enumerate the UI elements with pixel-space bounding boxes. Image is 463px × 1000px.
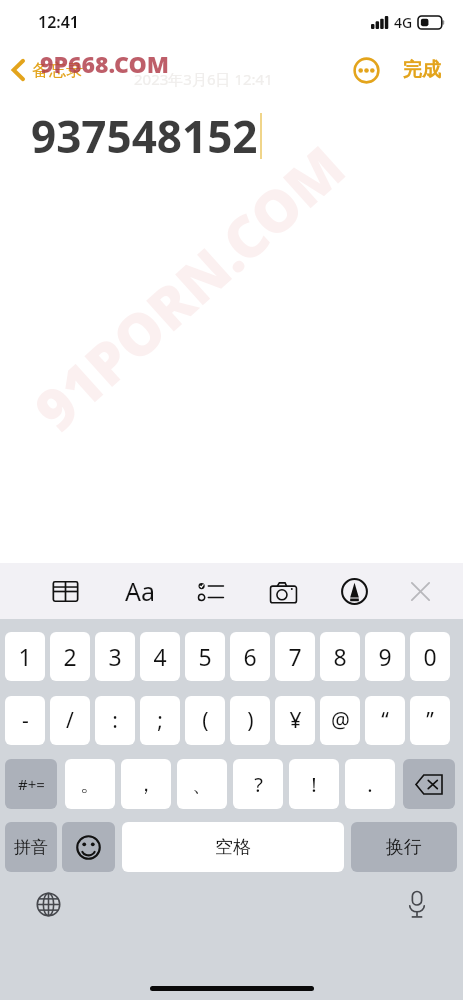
staticText: - [22,706,29,735]
button[interactable]: 5 [185,632,225,681]
button[interactable]: Emoji [62,822,115,872]
staticText: : [112,706,118,735]
staticText: 1 [18,641,32,672]
button[interactable]: 8 [320,632,360,681]
button[interactable]: ¥ [275,696,315,745]
staticText: 6 [243,641,257,672]
staticText: 3 [108,641,122,672]
button[interactable]: : [95,696,135,745]
staticText: 2 [63,641,77,672]
staticText: 9P668.COM [40,48,169,79]
staticText: 备忘录 [32,60,83,81]
staticText: ” [426,706,434,735]
button[interactable]: “ [365,696,405,745]
staticText: @ [331,706,350,735]
button[interactable]: Back [0,53,93,87]
staticText: 7 [288,641,302,672]
other: Back [12,59,25,81]
staticText: 8 [333,641,347,672]
staticText: 2023年3月6日 12:41 [134,69,273,89]
button[interactable]: ” [410,696,450,745]
staticText: ¥ [289,706,302,735]
staticText: ) [247,706,254,735]
button[interactable]: Dictation [395,882,439,926]
button[interactable]: 1 [5,632,45,681]
button[interactable]: . [345,759,395,809]
staticText: 4 [153,641,167,672]
staticText: 4G [394,13,413,32]
button[interactable]: #+= [5,759,57,809]
staticText: 空格 [215,836,251,859]
button[interactable]: @ [320,696,360,745]
staticText: . [367,771,373,798]
staticText: 12:41 [38,11,80,33]
staticText: 91PORN.COM [17,127,361,448]
button[interactable]: 6 [230,632,270,681]
staticText: 完成 [403,58,441,82]
staticText: / [66,706,74,735]
button[interactable]: 。 [65,759,115,809]
staticText: 5 [198,641,212,672]
staticText: ， [136,772,156,797]
button[interactable]: ! [289,759,339,809]
staticText: ; [157,706,163,735]
button[interactable]: ? [233,759,283,809]
button[interactable]: Markup [333,570,375,612]
button[interactable]: / [50,696,90,745]
staticText: 0 [423,641,437,672]
staticText: 。 [80,772,100,797]
button[interactable]: Table [44,570,86,612]
button[interactable]: 空格 [122,822,344,872]
button[interactable]: 0 [410,632,450,681]
staticText: ? [254,771,263,798]
button[interactable]: Checklist [189,570,231,612]
button[interactable]: ; [140,696,180,745]
button[interactable]: 完成 [399,52,445,88]
button[interactable]: Backspace [403,759,455,809]
button[interactable]: Change keyboard [26,882,70,926]
button[interactable]: 、 [177,759,227,809]
button[interactable]: 3 [95,632,135,681]
staticText: “ [381,706,389,735]
staticText: ! [311,771,317,798]
button[interactable]: More options [349,53,383,87]
button[interactable]: ， [121,759,171,809]
button[interactable]: Aa [119,568,162,614]
staticText: 拼音 [14,837,48,858]
staticText: 、 [192,772,212,797]
button[interactable]: ) [230,696,270,745]
button[interactable]: 9 [365,632,405,681]
button[interactable]: Close keyboard [399,570,441,612]
button[interactable]: Camera [262,570,304,612]
button[interactable]: - [5,696,45,745]
staticText: ( [202,706,209,735]
button[interactable]: 4 [140,632,180,681]
staticText: #+= [18,774,45,794]
button[interactable]: 7 [275,632,315,681]
button[interactable]: ( [185,696,225,745]
staticText: 937548152 [31,106,258,166]
button[interactable]: 换行 [351,822,457,872]
button[interactable]: 2 [50,632,90,681]
staticText: 换行 [386,836,422,859]
staticText: 9 [378,641,392,672]
button[interactable]: 拼音 [5,822,57,872]
